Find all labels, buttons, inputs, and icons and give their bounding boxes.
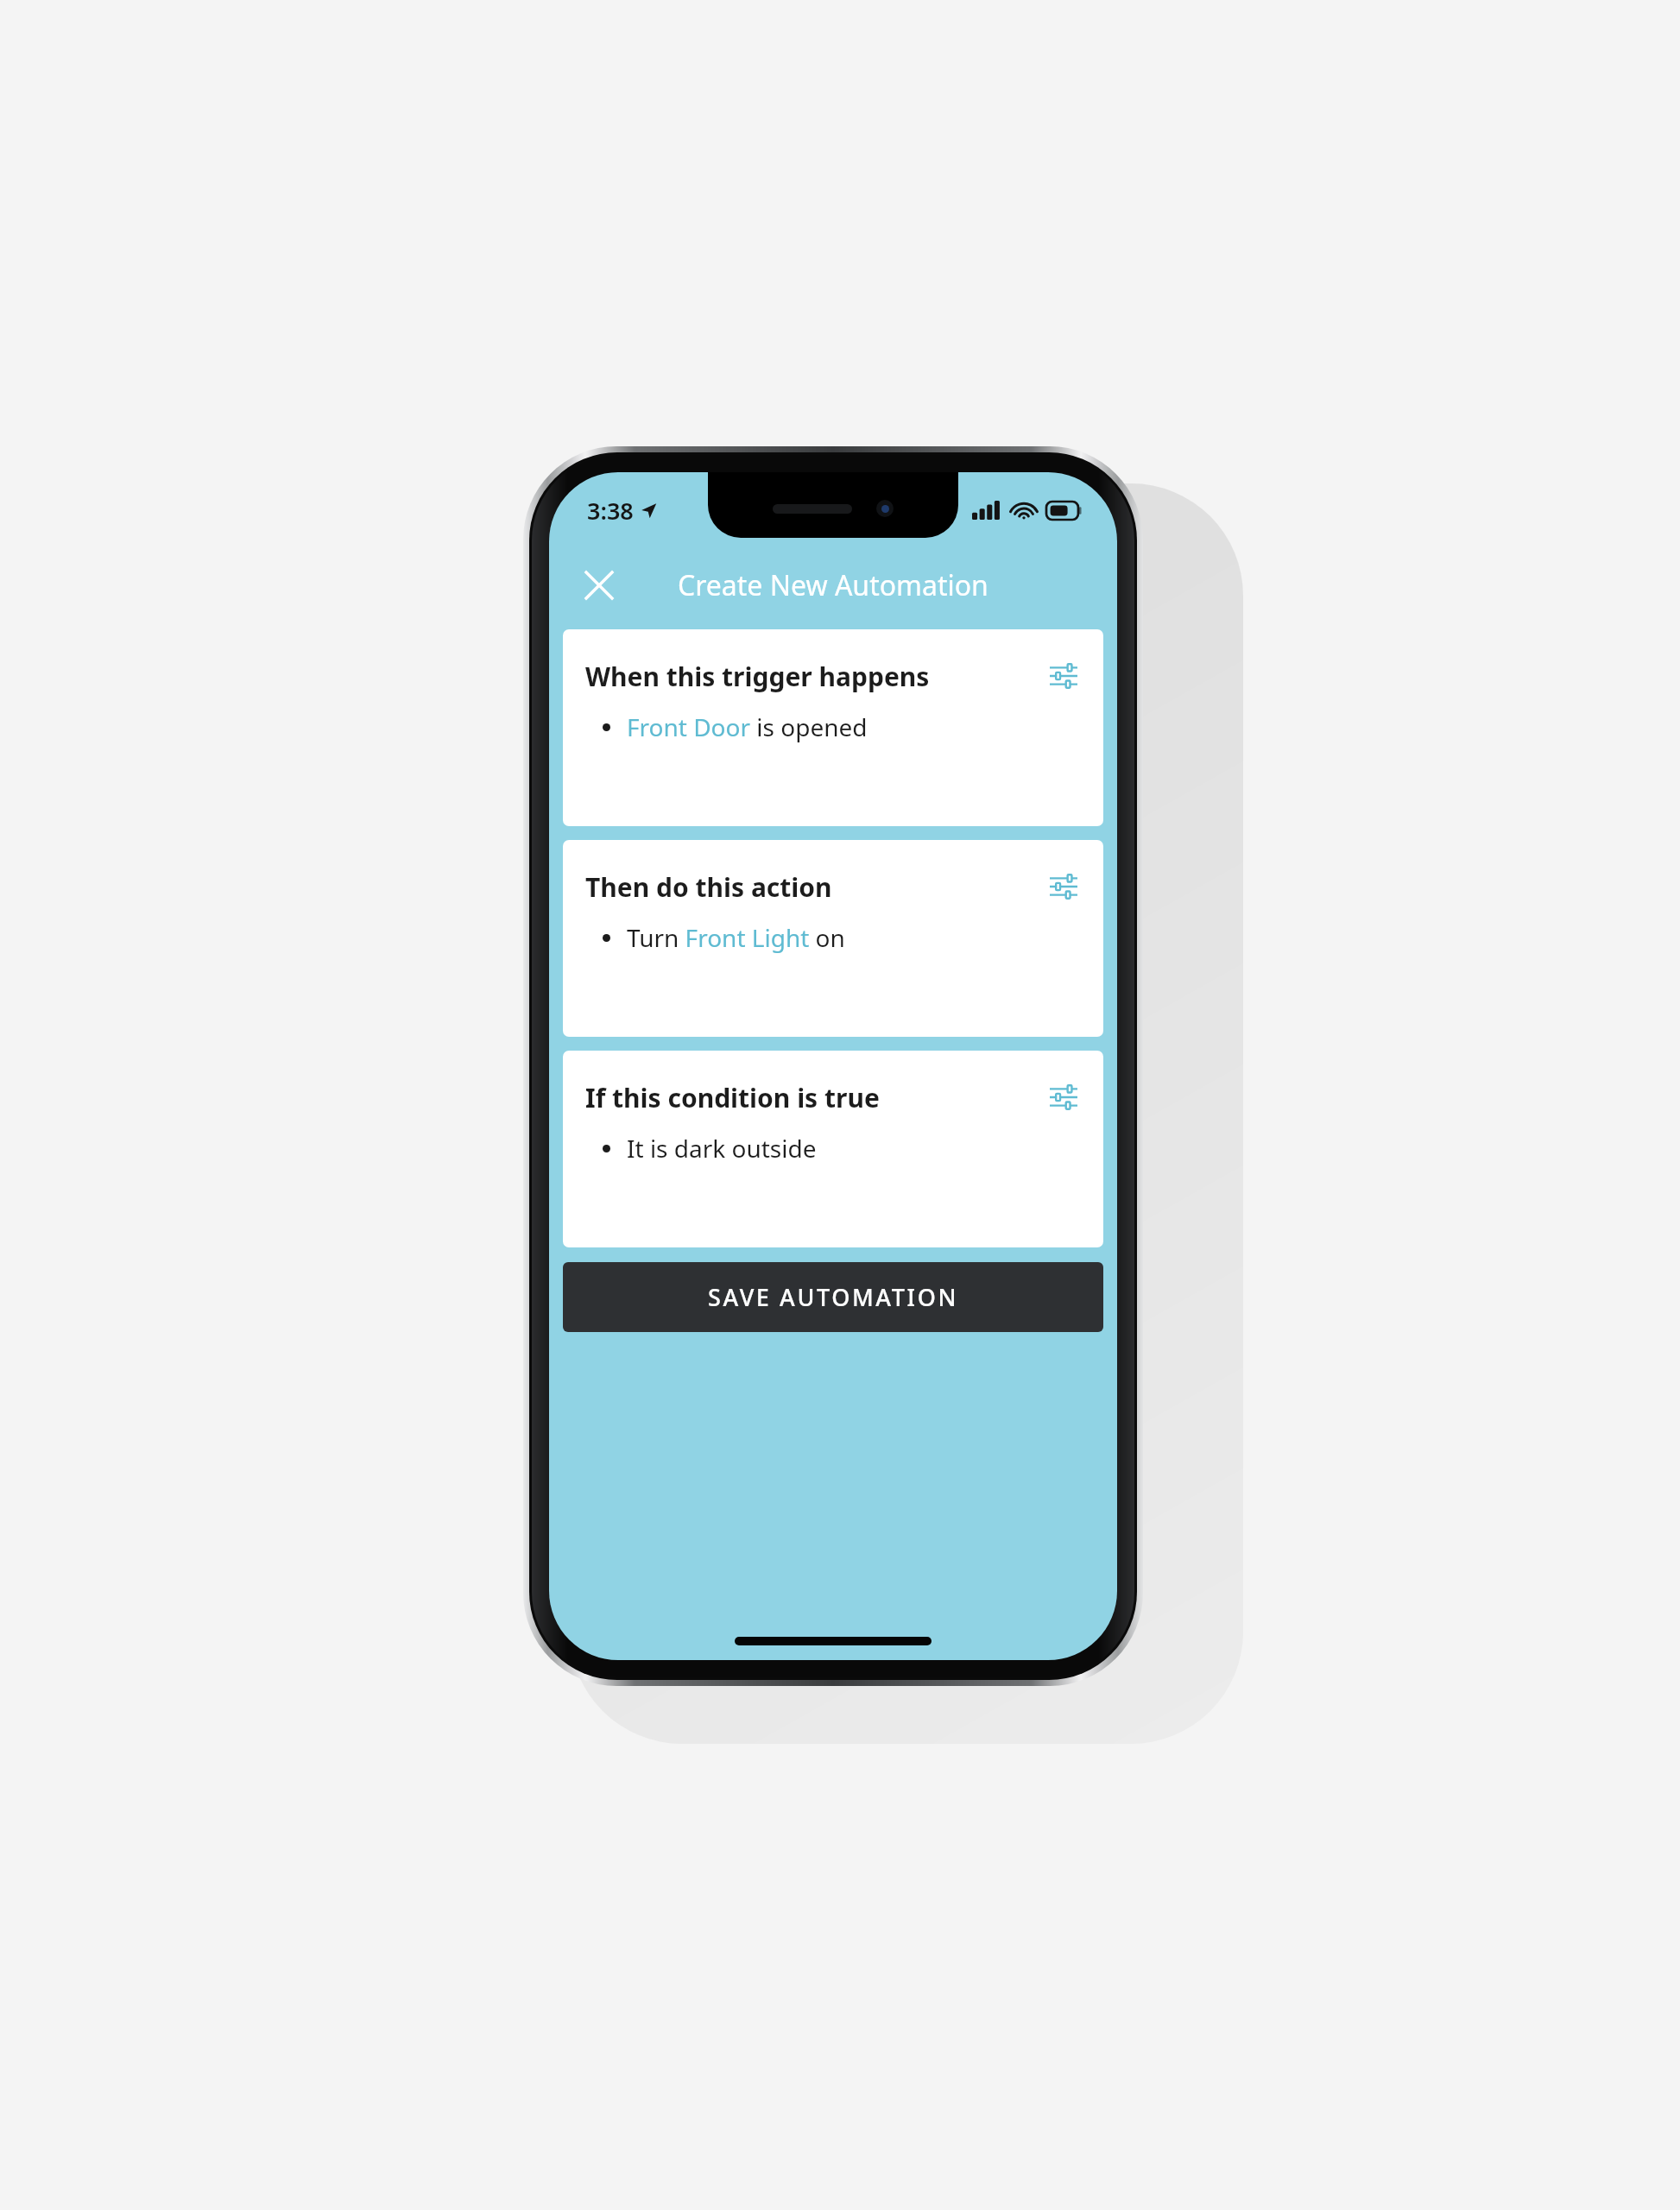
staticText: Create New Automation [678, 566, 988, 604]
staticText: When this trigger happens [585, 659, 930, 694]
staticText: 3:38 [587, 495, 634, 527]
staticText: It is dark outside [627, 1132, 817, 1165]
button[interactable]: Edit settings [1045, 1078, 1083, 1116]
button[interactable]: Close [572, 560, 627, 610]
button[interactable]: Edit settings [1045, 868, 1083, 906]
button[interactable]: SAVE AUTOMATION [563, 1262, 1103, 1332]
button[interactable]: Then do this action [563, 840, 1103, 1037]
button[interactable]: If this condition is true [563, 1051, 1103, 1247]
staticText: SAVE AUTOMATION [708, 1281, 958, 1313]
staticText: Front Door is opened [627, 710, 868, 743]
button[interactable]: When this trigger happens [563, 629, 1103, 826]
staticText: If this condition is true [585, 1080, 880, 1115]
staticText: Then do this action [585, 869, 832, 905]
staticText: Turn Front Light on [627, 921, 845, 954]
button[interactable]: Edit settings [1045, 657, 1083, 695]
